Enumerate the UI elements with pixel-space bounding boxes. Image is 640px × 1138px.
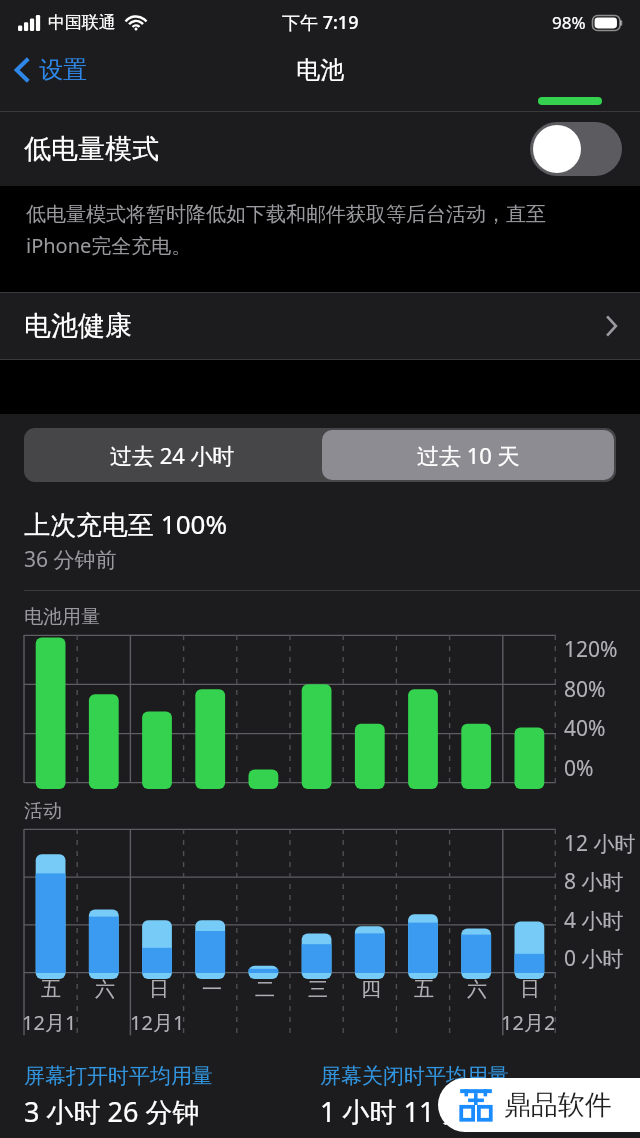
staticText: 12月20日 (501, 1009, 554, 1036)
staticText: 六 (95, 977, 115, 1002)
staticText: 0 小时 (564, 944, 624, 973)
staticText: 鼎品软件 (504, 1088, 612, 1122)
staticText: 下午 7:19 (282, 10, 359, 35)
staticText: 电池用量 (24, 605, 100, 629)
staticText: 一 (202, 977, 222, 1002)
staticText: 低电量模式将暂时降低如下载和邮件获取等后台活动，直至 iPhone完全充电。 (26, 202, 546, 258)
staticText: 日 (520, 977, 540, 1002)
staticText: 98% (552, 11, 586, 34)
staticText: 中国联通 (48, 12, 116, 33)
staticText: 二 (255, 977, 275, 1002)
staticText: 过去 24 小时 (110, 440, 235, 470)
staticText: 8 小时 (564, 867, 624, 896)
staticText: 120% (564, 635, 618, 664)
staticText: 4 小时 (564, 906, 624, 935)
staticText: 电池 (296, 55, 344, 85)
button[interactable]: 低电量模式开关 (530, 122, 622, 176)
staticText: 过去 10 天 (417, 440, 520, 470)
button[interactable]: 设置 (0, 47, 101, 93)
staticText: 40% (564, 714, 606, 743)
staticText: 六 (467, 977, 487, 1002)
button[interactable]: 过去 24 小时 (24, 428, 320, 482)
staticText: 80% (564, 675, 606, 704)
button[interactable]: 过去 10 天 (322, 430, 614, 480)
staticText: 屏幕关闭时平均用量 (320, 1063, 509, 1089)
staticText: 12月13日 (130, 1009, 183, 1036)
staticText: 三 (308, 977, 328, 1002)
staticText: 36 分钟前 (24, 545, 117, 574)
staticText: 低电量模式 (24, 132, 159, 166)
staticText: 3 小时 26 分钟 (24, 1093, 200, 1130)
staticText: 电池健康 (24, 309, 132, 343)
button[interactable]: 电池健康 (0, 292, 640, 360)
staticText: 日 (149, 977, 169, 1002)
staticText: 上次充电至 100% (24, 506, 227, 542)
staticText: 1 小时 11 分钟 (320, 1093, 496, 1130)
button[interactable]: 低电量模式 (0, 112, 640, 186)
staticText: 0% (564, 754, 594, 783)
staticText: 五 (414, 977, 434, 1002)
staticText: 设置 (39, 55, 87, 85)
staticText: 12 小时 (564, 829, 636, 858)
staticText: 屏幕打开时平均用量 (24, 1063, 213, 1089)
staticText: 活动 (24, 799, 62, 823)
staticText: 五 (41, 977, 61, 1002)
staticText: 四 (361, 977, 381, 1002)
staticText: 12月11日 (22, 1009, 76, 1036)
